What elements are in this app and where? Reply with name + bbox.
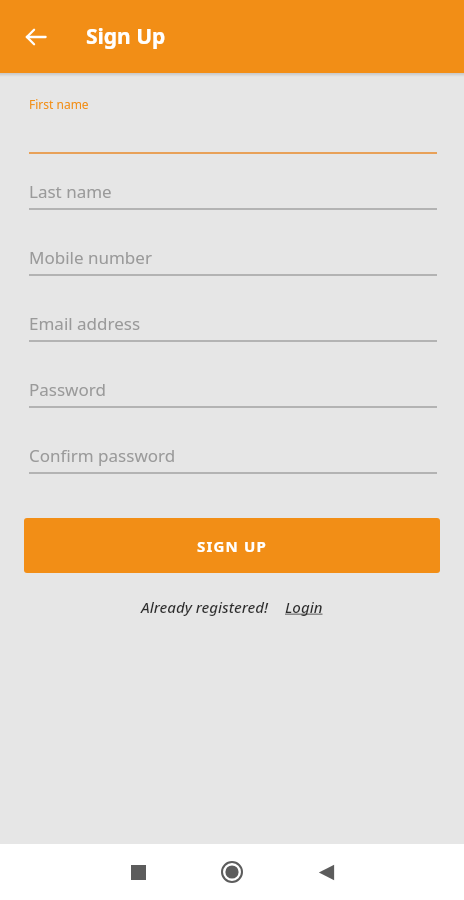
button[interactable]: Back [18, 19, 54, 55]
button[interactable]: Home [204, 844, 260, 900]
button[interactable]: First name [0, 96, 464, 154]
staticText: Sign Up [86, 22, 166, 51]
staticText: First name [29, 96, 89, 112]
staticText: SIGN UP [197, 536, 268, 556]
button[interactable]: Login [285, 597, 323, 617]
staticText: Email address [29, 312, 141, 335]
staticText: Login [285, 597, 323, 617]
button[interactable]: Back [298, 844, 354, 900]
staticText: Mobile number [29, 246, 152, 269]
button[interactable]: SIGN UP [24, 518, 440, 573]
button[interactable]: Overview [110, 844, 166, 900]
button[interactable]: Password [0, 352, 464, 418]
staticText: Password [29, 378, 106, 401]
button[interactable]: Mobile number [0, 220, 464, 286]
button[interactable]: Confirm password [0, 418, 464, 484]
staticText: Already registered! [141, 597, 269, 617]
button[interactable]: Last name [0, 154, 464, 220]
staticText: Confirm password [29, 444, 176, 467]
button[interactable]: Email address [0, 286, 464, 352]
staticText: Last name [29, 180, 112, 203]
